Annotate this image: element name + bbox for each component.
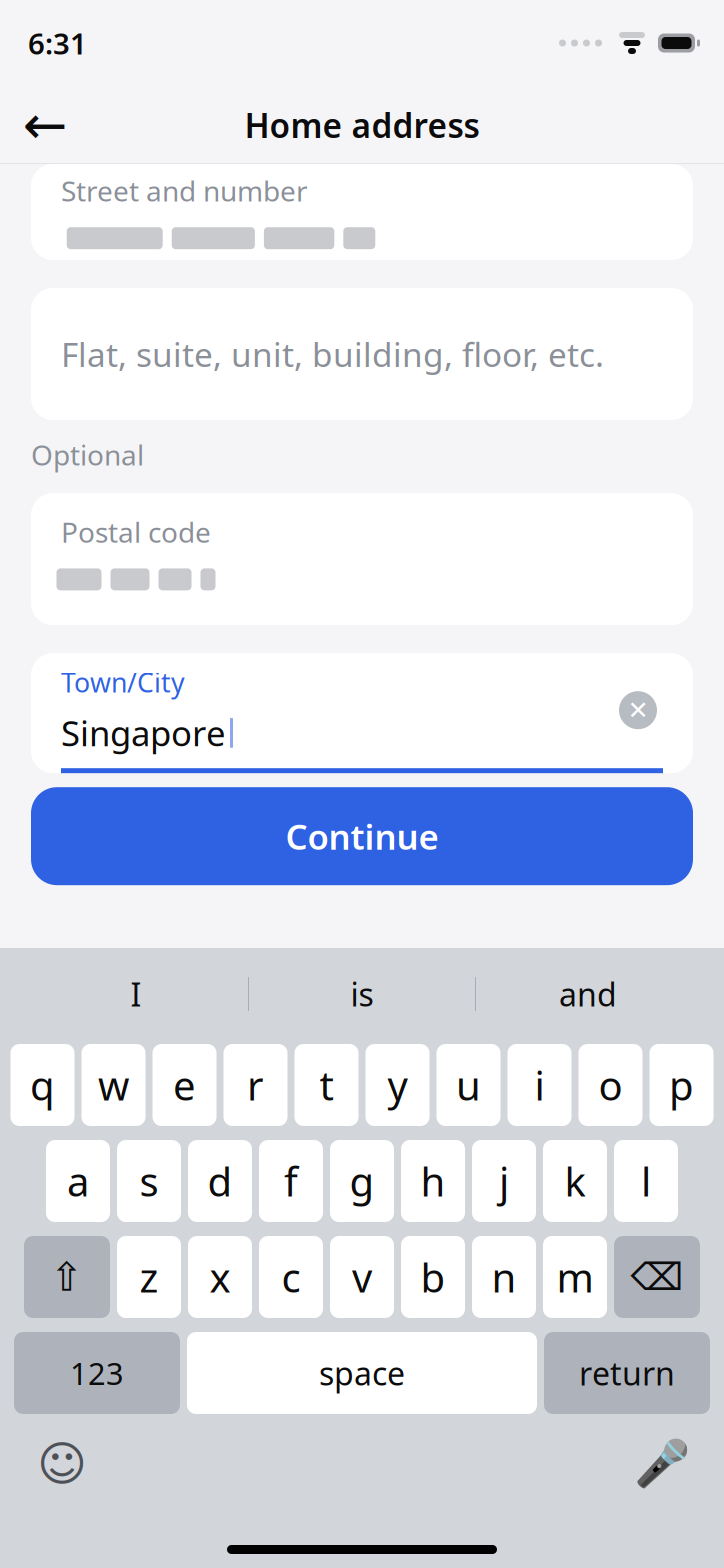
staticText: u xyxy=(456,1058,481,1111)
button[interactable]: f xyxy=(259,1140,323,1222)
staticText: s xyxy=(139,1154,158,1207)
staticText: is xyxy=(350,973,373,1015)
staticText: Optional xyxy=(31,436,144,473)
staticText: Continue xyxy=(285,813,438,859)
staticText: c xyxy=(281,1250,300,1303)
staticText: 123 xyxy=(70,1353,124,1393)
button[interactable]: Numbers xyxy=(14,1332,180,1414)
staticText: j xyxy=(499,1154,509,1207)
button[interactable]: w xyxy=(81,1044,145,1126)
staticText: space xyxy=(319,1352,405,1394)
staticText: y xyxy=(387,1058,407,1111)
button[interactable]: space xyxy=(187,1332,537,1414)
button[interactable]: l xyxy=(614,1140,678,1222)
button[interactable]: and xyxy=(476,964,700,1024)
button[interactable]: Emoji keyboard xyxy=(26,1428,98,1500)
button[interactable]: is xyxy=(249,964,475,1024)
staticText: z xyxy=(139,1250,158,1303)
staticText: and xyxy=(559,973,617,1015)
button[interactable]: Delete xyxy=(614,1236,700,1318)
staticText: I xyxy=(130,973,141,1015)
staticText: return xyxy=(579,1352,675,1394)
staticText: Town/City xyxy=(61,664,185,700)
button[interactable]: p xyxy=(649,1044,713,1126)
button[interactable]: Return xyxy=(544,1332,710,1414)
button[interactable]: I xyxy=(24,964,248,1024)
button[interactable]: j xyxy=(472,1140,536,1222)
staticText: f xyxy=(284,1154,298,1207)
button[interactable]: i xyxy=(507,1044,571,1126)
button[interactable]: Flat, suite, unit, building, floor, etc. xyxy=(31,288,693,420)
staticText: l xyxy=(641,1154,651,1207)
staticText: v xyxy=(352,1250,372,1303)
button[interactable]: Postal code xyxy=(31,493,693,625)
button[interactable]: Clear text xyxy=(613,685,663,735)
button[interactable]: c xyxy=(259,1236,323,1318)
button[interactable]: t xyxy=(294,1044,358,1126)
button[interactable]: d xyxy=(188,1140,252,1222)
staticText: m xyxy=(556,1250,593,1303)
button[interactable]: Continue xyxy=(31,787,693,885)
button[interactable]: z xyxy=(117,1236,181,1318)
staticText: a xyxy=(67,1154,89,1207)
button[interactable]: h xyxy=(401,1140,465,1222)
button[interactable]: a xyxy=(46,1140,110,1222)
button[interactable]: o xyxy=(578,1044,642,1126)
staticText: ⇧ xyxy=(50,1254,84,1300)
staticText: t xyxy=(319,1058,333,1111)
staticText: Street and number xyxy=(61,172,308,209)
staticText: Flat, suite, unit, building, floor, etc. xyxy=(61,332,604,376)
staticText: p xyxy=(669,1058,694,1111)
staticText: w xyxy=(98,1058,129,1111)
button[interactable]: y xyxy=(365,1044,429,1126)
button[interactable]: v xyxy=(330,1236,394,1318)
staticText: g xyxy=(349,1154,374,1207)
button[interactable]: q xyxy=(10,1044,74,1126)
staticText: n xyxy=(491,1250,516,1303)
staticText: Home address xyxy=(244,103,479,147)
button[interactable]: Back xyxy=(14,94,76,156)
button[interactable]: Dictation xyxy=(626,1428,698,1500)
staticText: h xyxy=(420,1154,445,1207)
staticText: Singapore xyxy=(61,710,226,756)
staticText: Postal code xyxy=(61,513,211,550)
button[interactable]: u xyxy=(436,1044,500,1126)
staticText: 6:31 xyxy=(28,23,87,62)
button[interactable]: m xyxy=(543,1236,607,1318)
staticText: ☺ xyxy=(37,1437,87,1491)
staticText: x xyxy=(209,1250,230,1303)
staticText: o xyxy=(598,1058,622,1111)
button[interactable]: g xyxy=(330,1140,394,1222)
button[interactable]: s xyxy=(117,1140,181,1222)
button[interactable]: r xyxy=(223,1044,287,1126)
staticText: q xyxy=(30,1058,55,1111)
button[interactable]: b xyxy=(401,1236,465,1318)
staticText: ✕ xyxy=(627,696,648,725)
button[interactable]: Street and number xyxy=(31,164,693,260)
button[interactable]: Shift xyxy=(24,1236,110,1318)
staticText: r xyxy=(247,1058,264,1111)
button[interactable]: n xyxy=(472,1236,536,1318)
staticText: ⌫ xyxy=(630,1256,683,1298)
staticText: ← xyxy=(22,95,67,155)
button[interactable]: k xyxy=(543,1140,607,1222)
button[interactable]: e xyxy=(152,1044,216,1126)
staticText: k xyxy=(564,1154,585,1207)
staticText: e xyxy=(173,1058,196,1111)
staticText: 🎤 xyxy=(634,1438,690,1490)
staticText: b xyxy=(420,1250,445,1303)
staticText: i xyxy=(534,1058,544,1111)
button[interactable]: x xyxy=(188,1236,252,1318)
staticText: d xyxy=(207,1154,232,1207)
